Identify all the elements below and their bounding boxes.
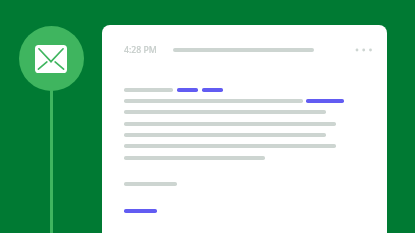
button[interactable]: Email xyxy=(19,26,84,91)
button[interactable]: Link one xyxy=(177,88,198,92)
button[interactable]: Link two xyxy=(202,88,223,92)
staticText: 4:28 PM xyxy=(124,44,157,56)
button[interactable]: Reply xyxy=(124,209,157,213)
button[interactable]: More options xyxy=(351,42,377,58)
button[interactable]: Link three xyxy=(306,99,344,103)
